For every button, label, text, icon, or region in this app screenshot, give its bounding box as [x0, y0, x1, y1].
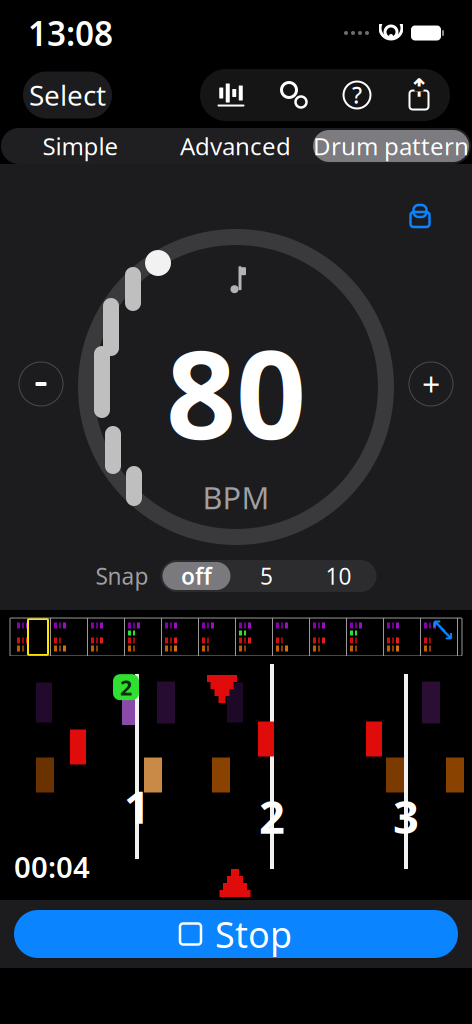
button[interactable]: Advanced	[158, 130, 313, 162]
staticText: BPM	[202, 477, 269, 518]
staticText: ↖	[431, 615, 448, 638]
staticText: 3	[393, 786, 419, 846]
button[interactable]: Decrease tempo	[13, 356, 69, 412]
button[interactable]: Drum pattern	[313, 130, 469, 162]
staticText: Simple	[42, 130, 118, 162]
staticText: Select	[29, 76, 106, 114]
button[interactable]: Statistics	[200, 69, 262, 121]
button[interactable]: 10	[302, 562, 374, 590]
button[interactable]: Lock tempo	[400, 196, 440, 236]
staticText: ↑	[408, 74, 429, 102]
button[interactable]: Pattern overview	[10, 618, 462, 656]
button[interactable]: Simple	[3, 130, 158, 162]
staticText: 00:04	[14, 847, 90, 886]
staticText: 80	[166, 310, 306, 473]
button[interactable]: Increase tempo	[403, 356, 459, 412]
staticText: 1	[124, 776, 150, 836]
button[interactable]: off	[162, 562, 230, 590]
staticText: 5	[260, 561, 273, 591]
staticText: Advanced	[180, 130, 291, 162]
staticText: 2	[259, 786, 285, 846]
button[interactable]: 5	[230, 562, 302, 590]
staticText: off	[181, 561, 212, 591]
button[interactable]: Settings	[262, 69, 326, 121]
staticText: 13:08	[28, 11, 113, 55]
staticText: 10	[325, 561, 351, 591]
staticText: Stop	[215, 910, 292, 958]
staticText: ?	[352, 80, 362, 110]
button[interactable]: Select	[23, 71, 112, 118]
button[interactable]: Help	[326, 69, 388, 121]
staticText: Drum pattern	[313, 130, 469, 162]
button[interactable]: Stop	[14, 910, 458, 958]
staticText: 2	[120, 673, 132, 701]
staticText: ↘	[438, 622, 455, 645]
staticText: +	[422, 363, 440, 405]
staticText: Snap	[95, 561, 148, 591]
button[interactable]: Share	[388, 69, 450, 121]
